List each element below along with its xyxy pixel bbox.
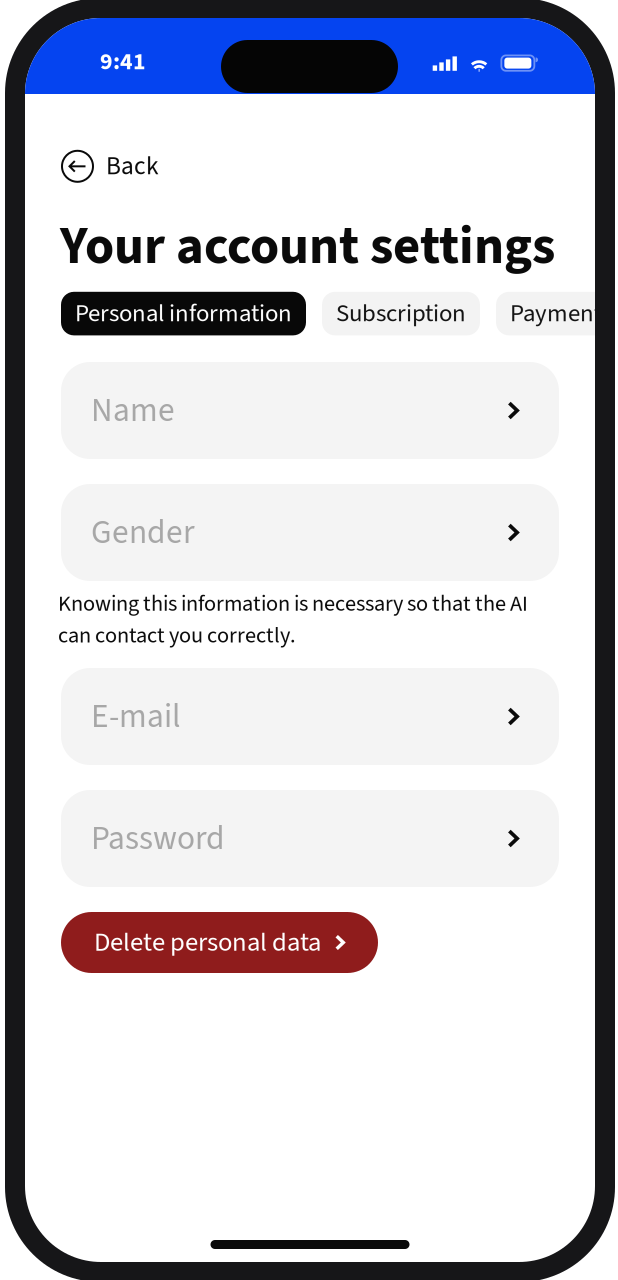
button[interactable]: Name (61, 362, 559, 459)
staticText: E-mail (91, 693, 181, 740)
staticText: Password (91, 815, 225, 862)
staticText: Delete personal data (94, 923, 321, 961)
staticText: Personal information (75, 296, 292, 331)
button[interactable]: Delete personal data (61, 912, 378, 973)
button[interactable]: Gender (61, 484, 559, 581)
button[interactable]: Back (61, 150, 159, 183)
button[interactable]: E-mail (61, 668, 559, 765)
button[interactable]: Password (61, 790, 559, 887)
staticText: Gender (91, 509, 195, 556)
button[interactable]: Subscription (322, 292, 480, 335)
staticText: Knowing this information is necessary so… (58, 588, 528, 651)
button[interactable]: Payment method (496, 292, 618, 335)
staticText: Payment method (510, 296, 618, 331)
staticText: Name (91, 387, 175, 434)
button[interactable]: Personal information (61, 292, 306, 335)
staticText: 9:41 (100, 45, 146, 79)
staticText: Back (106, 148, 159, 184)
staticText: Subscription (336, 296, 466, 331)
staticText: Your account settings (60, 209, 555, 284)
